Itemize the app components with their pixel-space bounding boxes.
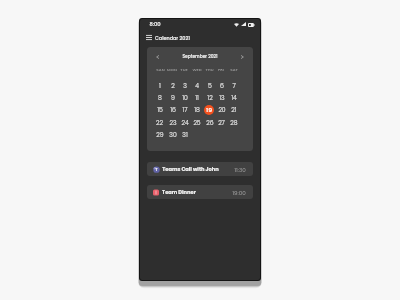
staticText: 1	[159, 82, 161, 91]
staticText: 15	[157, 106, 163, 115]
button[interactable]: 20	[216, 105, 227, 116]
staticText: 22	[156, 119, 163, 128]
staticText: 18	[194, 106, 200, 115]
button[interactable]: 17	[179, 105, 190, 116]
staticText: 8	[158, 94, 162, 103]
button[interactable]: 22	[154, 118, 165, 129]
button[interactable]: 16	[167, 105, 178, 116]
button[interactable]: Open navigation menu	[144, 32, 154, 42]
button[interactable]: 25	[191, 118, 202, 129]
button[interactable]: 29	[154, 130, 165, 141]
button[interactable]: 21	[228, 105, 239, 116]
staticText: 3	[183, 82, 187, 91]
staticText: 16	[170, 106, 176, 115]
button[interactable]: Previous month	[152, 52, 162, 62]
button[interactable]: 30	[167, 130, 178, 141]
button[interactable]: 7	[228, 81, 239, 92]
staticText: 2	[171, 82, 175, 91]
staticText: THU	[205, 67, 214, 73]
staticText: SAN	[156, 67, 165, 73]
staticText: 28	[230, 119, 238, 128]
staticText: 30	[169, 131, 177, 140]
button[interactable]: 28	[228, 118, 239, 129]
button[interactable]: 27	[216, 118, 227, 129]
button[interactable]: 15	[154, 105, 165, 116]
staticText: September 2021	[182, 53, 218, 59]
staticText: 13	[219, 94, 225, 103]
staticText: 11:30	[234, 166, 246, 174]
staticText: 23	[169, 119, 177, 128]
button[interactable]: 31	[179, 130, 190, 141]
staticText: TUE	[180, 67, 188, 73]
staticText: 31	[182, 131, 188, 140]
staticText: 6	[220, 82, 224, 91]
button[interactable]: 1	[154, 81, 165, 92]
button[interactable]: 24	[179, 118, 190, 129]
staticText: 12	[207, 94, 213, 103]
staticText: 27	[218, 119, 225, 128]
button[interactable]: 26	[204, 118, 215, 129]
button[interactable]: 10	[179, 93, 190, 104]
staticText: 26	[206, 119, 214, 128]
button[interactable]: 3	[179, 81, 190, 92]
staticText: 10	[182, 94, 188, 103]
staticText: 21	[231, 106, 237, 115]
staticText: Team Dinner	[162, 189, 196, 196]
staticText: 7	[232, 82, 236, 91]
staticText: MON	[167, 67, 177, 73]
button[interactable]: 18	[191, 105, 202, 116]
staticText: 25	[193, 119, 201, 128]
staticText: Teams Call with John	[162, 166, 219, 173]
button[interactable]: 23	[167, 118, 178, 129]
staticText: 5	[208, 82, 212, 91]
button[interactable]: Next month	[237, 52, 247, 62]
staticText: 19	[206, 106, 212, 114]
button[interactable]: 12	[204, 93, 215, 104]
button[interactable]: Team Dinner	[147, 185, 253, 199]
button[interactable]: 8	[154, 93, 165, 104]
staticText: 4	[195, 82, 199, 91]
staticText: 20	[218, 106, 226, 115]
button[interactable]: 13	[216, 93, 227, 104]
button[interactable]: Teams Call with John	[147, 162, 253, 176]
button[interactable]: 14	[228, 93, 239, 104]
staticText: 24	[181, 119, 189, 128]
staticText: 8:00	[149, 21, 161, 28]
staticText: 11	[195, 94, 199, 103]
staticText: WED	[192, 67, 202, 73]
button[interactable]: 19	[204, 105, 214, 115]
staticText: Calendar 2021	[155, 35, 190, 42]
button[interactable]: 2	[167, 81, 178, 92]
button[interactable]: 11	[191, 93, 202, 104]
button[interactable]: 5	[204, 81, 215, 92]
button[interactable]: 9	[167, 93, 178, 104]
staticText: FRI	[218, 67, 224, 73]
staticText: 14	[231, 94, 237, 103]
staticText: 9	[171, 94, 175, 103]
staticText: 29	[156, 131, 164, 140]
staticText: 17	[182, 106, 188, 115]
button[interactable]: 4	[191, 81, 202, 92]
staticText: 19:00	[232, 189, 246, 197]
button[interactable]: 6	[216, 81, 227, 92]
staticText: SAT	[230, 67, 238, 73]
